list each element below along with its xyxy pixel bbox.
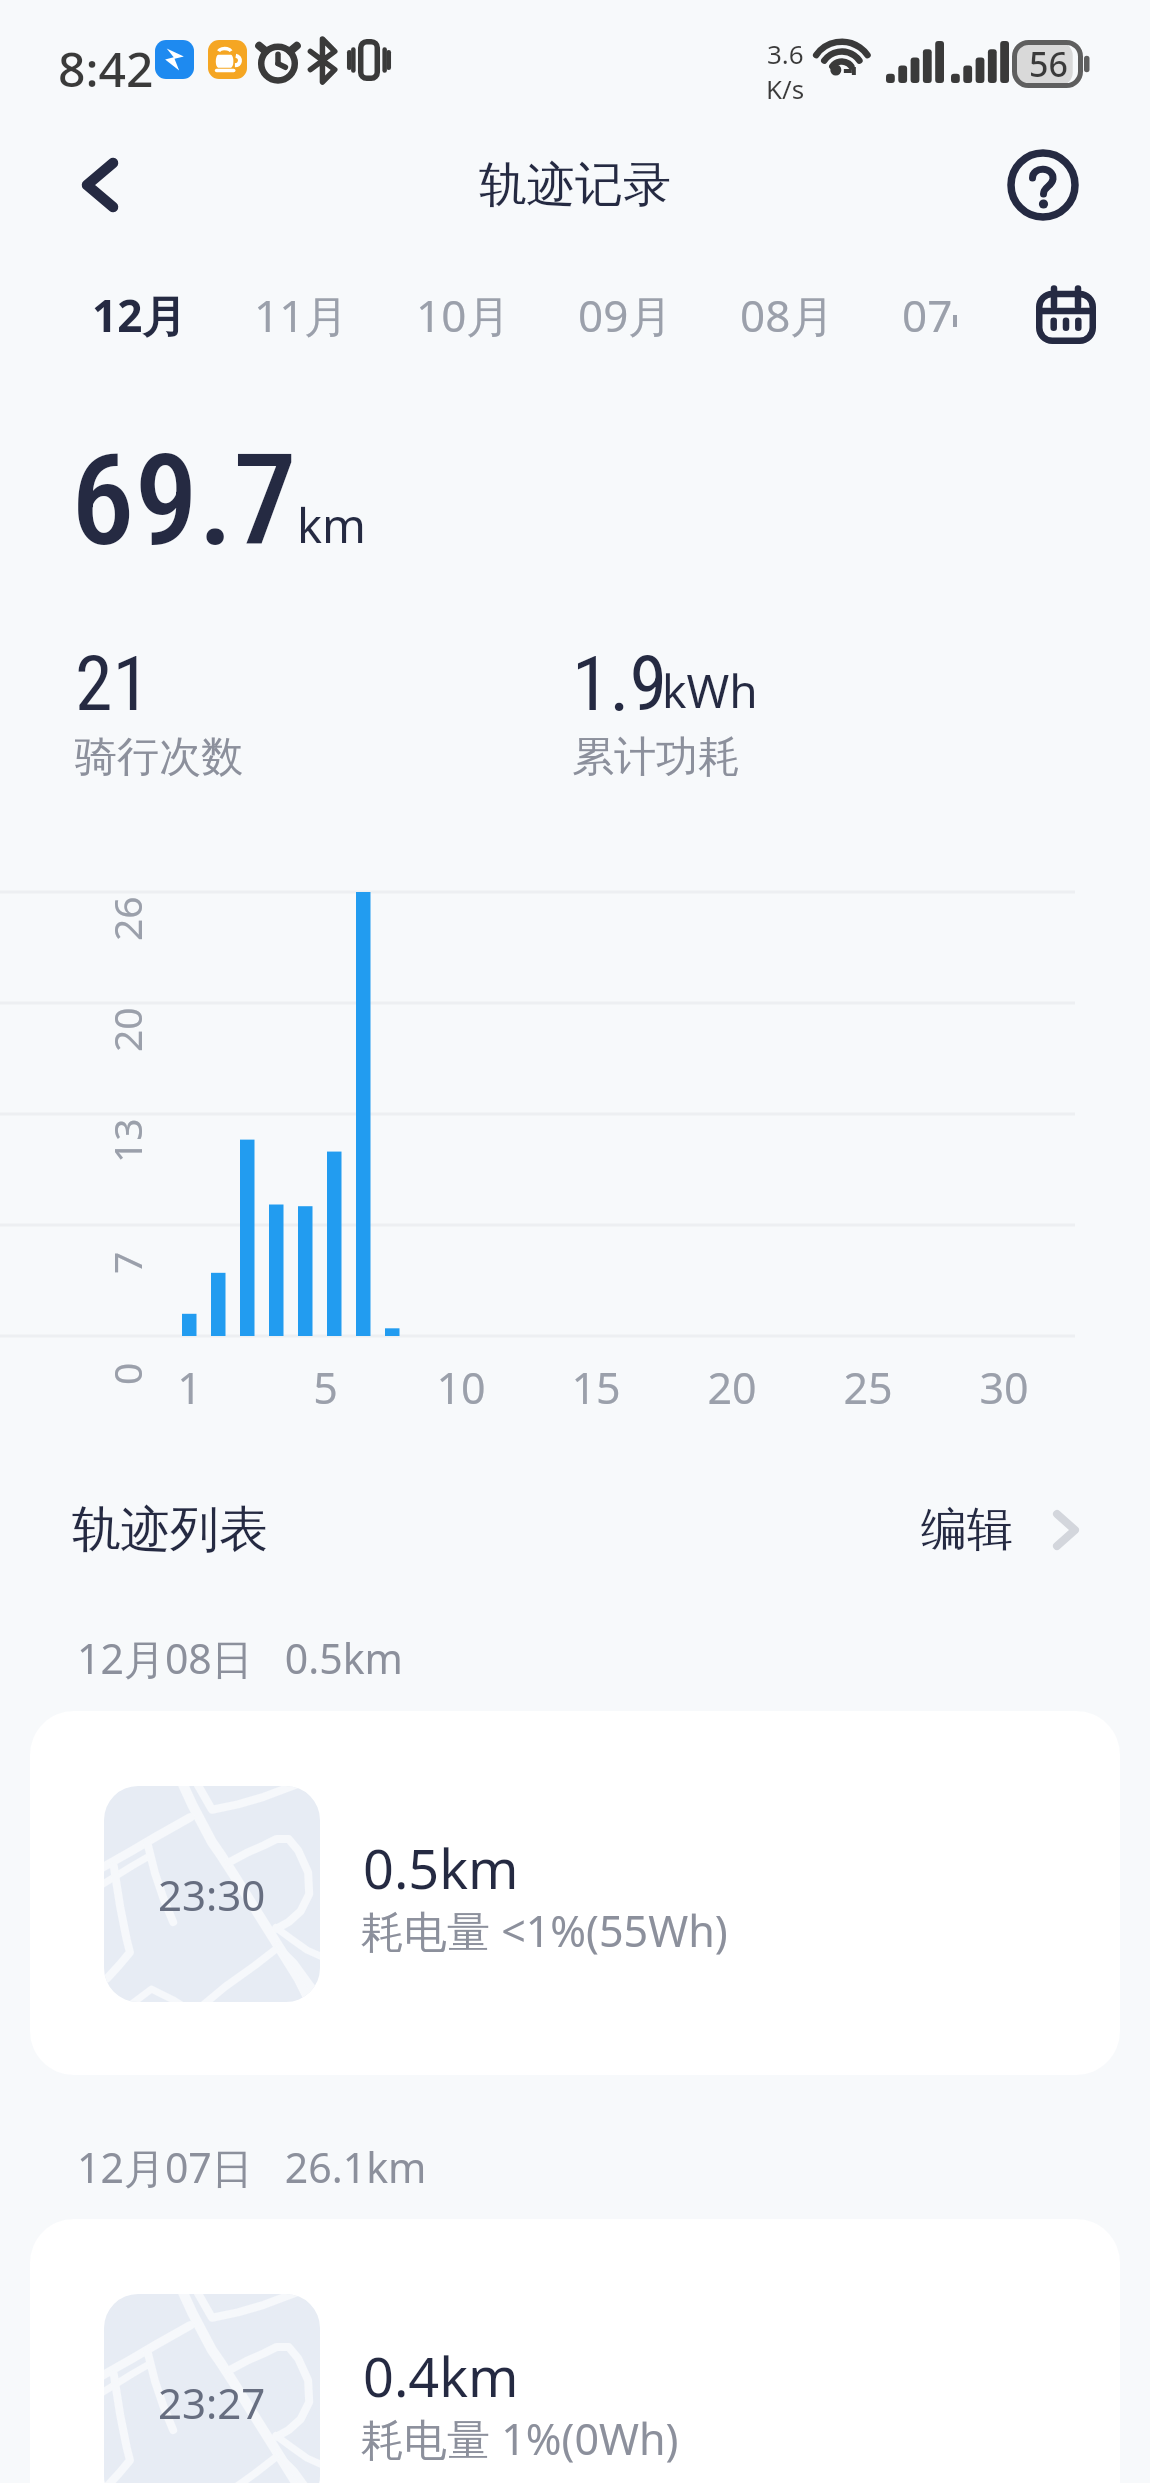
staticText: 0 xyxy=(100,1362,153,1385)
staticText: km xyxy=(297,493,367,557)
staticText: 5 xyxy=(313,1358,338,1417)
button[interactable]: Calendar xyxy=(1020,269,1112,361)
staticText: 56 xyxy=(1029,41,1068,87)
staticText: 13 xyxy=(100,1118,153,1163)
staticText: 1.9 xyxy=(572,639,668,728)
staticText: 7 xyxy=(100,1251,153,1274)
staticText: 0.4km xyxy=(363,2339,519,2413)
staticText: 69.7 xyxy=(71,426,297,575)
staticText: 11月 xyxy=(254,285,349,345)
staticText: 12月07日 26.1km xyxy=(77,2139,427,2195)
staticText: 10 xyxy=(436,1358,486,1417)
staticText: 8:42 xyxy=(58,36,154,101)
staticText: kWh xyxy=(662,659,758,722)
staticText: 08月 xyxy=(740,285,835,345)
staticText: 轨迹列表 xyxy=(72,1499,268,1561)
staticText: 25 xyxy=(843,1358,893,1417)
staticText: 编辑 xyxy=(921,1501,1013,1559)
staticText: 1 xyxy=(177,1358,202,1417)
button[interactable]: 12月 xyxy=(92,285,187,345)
staticText: 15 xyxy=(571,1358,621,1417)
staticText: 耗电量 <1%(55Wh) xyxy=(361,1901,728,1960)
button[interactable]: 23:30 xyxy=(30,1711,1120,2075)
staticText: 20 xyxy=(100,1007,153,1052)
button[interactable]: Back xyxy=(50,135,150,235)
button[interactable]: 11月 xyxy=(254,285,349,345)
staticText: 12月08日 0.5km xyxy=(77,1630,403,1686)
staticText: 21 xyxy=(75,639,151,728)
staticText: 3.6 xyxy=(767,36,804,71)
button[interactable]: 09月 xyxy=(578,285,673,345)
button[interactable]: 10月 xyxy=(416,285,511,345)
staticText: 23:30 xyxy=(158,1866,266,1923)
button[interactable]: 23:27 xyxy=(30,2219,1120,2483)
button[interactable]: 07 xyxy=(902,285,953,345)
button[interactable]: Help xyxy=(998,140,1088,230)
staticText: 07 xyxy=(902,285,953,345)
staticText: 12月 xyxy=(92,285,187,345)
staticText: K/s xyxy=(766,71,805,106)
staticText: 09月 xyxy=(578,285,673,345)
staticText: 轨迹记录 xyxy=(479,155,671,215)
staticText: 20 xyxy=(707,1358,757,1417)
staticText: 10月 xyxy=(416,285,511,345)
staticText: 骑行次数 xyxy=(75,731,243,784)
staticText: 耗电量 1%(0Wh) xyxy=(361,2409,679,2468)
staticText: 0.5km xyxy=(363,1831,519,1905)
staticText: 26 xyxy=(100,896,153,941)
staticText: 23:27 xyxy=(158,2374,266,2431)
staticText: 累计功耗 xyxy=(572,731,740,784)
button[interactable]: 08月 xyxy=(740,285,835,345)
staticText: 30 xyxy=(979,1358,1029,1417)
button[interactable]: 编辑 xyxy=(905,1487,1094,1573)
